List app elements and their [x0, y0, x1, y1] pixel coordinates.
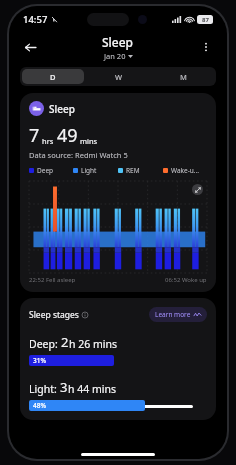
- staticText: Deep: [37, 166, 54, 175]
- staticText: Deep:: [29, 337, 58, 351]
- staticText: 2: [61, 333, 69, 351]
- staticText: Data source: Redmi Watch 5: [29, 150, 128, 160]
- staticText: 87: [202, 16, 209, 24]
- staticText: D: [50, 72, 56, 82]
- staticText: h 26 mins: [69, 337, 118, 351]
- staticText: Sleep: [49, 102, 75, 116]
- button[interactable]: More options: [195, 36, 217, 58]
- button[interactable]: Expand chart: [192, 184, 203, 195]
- staticText: Light: [81, 166, 97, 175]
- staticText: Jan 20: [104, 51, 126, 61]
- staticText: 49: [57, 123, 78, 148]
- staticText: 7: [29, 123, 40, 148]
- button[interactable]: Back: [19, 36, 41, 58]
- staticText: 14:57: [23, 13, 48, 26]
- button[interactable]: M: [153, 69, 214, 84]
- staticText: mins: [80, 136, 98, 146]
- staticText: 3: [60, 378, 68, 396]
- staticText: W: [115, 72, 123, 82]
- button[interactable]: W: [88, 69, 149, 84]
- staticText: Learn more: [155, 310, 191, 319]
- staticText: Light:: [29, 382, 57, 396]
- staticText: 22:52 Fell asleep: [29, 276, 76, 284]
- staticText: Sleep: [102, 34, 134, 50]
- staticText: 31%: [33, 356, 46, 365]
- staticText: M: [180, 72, 187, 82]
- staticText: h 44 mins: [68, 382, 117, 396]
- button[interactable]: D: [22, 69, 84, 84]
- staticText: hrs: [42, 136, 54, 146]
- button[interactable]: Jan 20: [104, 51, 133, 61]
- staticText: Wake-u...: [171, 166, 200, 175]
- staticText: 48%: [33, 401, 46, 410]
- staticText: REM: [126, 166, 140, 175]
- button[interactable]: [82, 312, 88, 318]
- staticText: 06:52 Woke up: [165, 276, 207, 284]
- button[interactable]: Learn more: [149, 307, 207, 322]
- staticText: Sleep stages: [29, 309, 79, 321]
